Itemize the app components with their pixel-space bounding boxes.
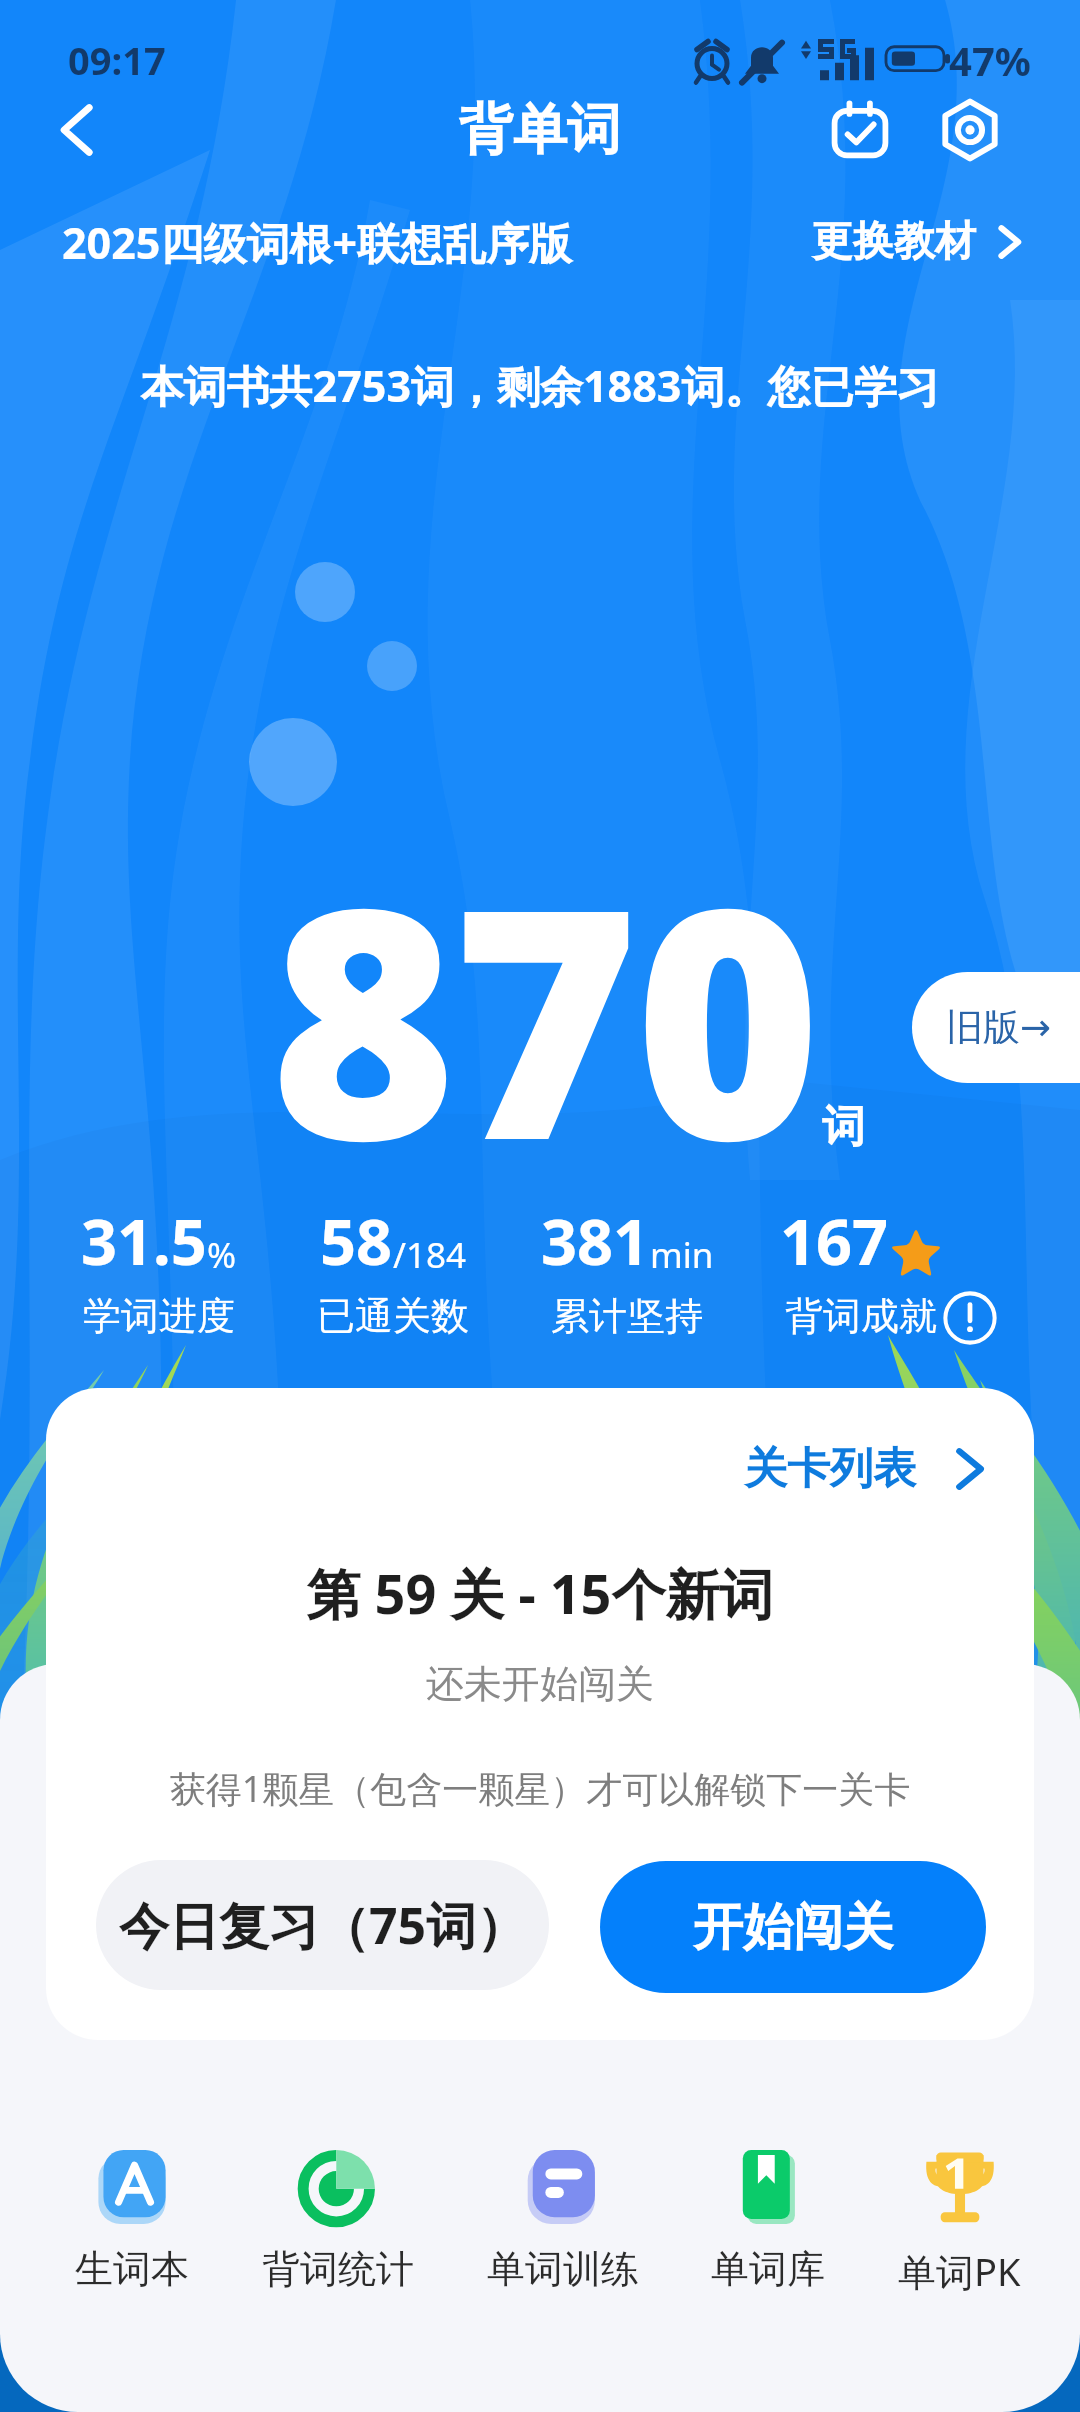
- staticText: 381: [541, 1198, 650, 1284]
- button[interactable]: 58: [276, 1198, 510, 1340]
- button[interactable]: 旧版→: [912, 972, 1080, 1083]
- staticText: 关卡列表: [744, 1442, 916, 1496]
- staticText: 背词统计: [262, 2245, 414, 2293]
- staticText: 生词本: [75, 2245, 189, 2293]
- staticText: 09:17: [68, 34, 166, 86]
- button[interactable]: 31.5: [42, 1198, 276, 1340]
- staticText: 47%: [949, 33, 1031, 87]
- button[interactable]: 单词库: [695, 2141, 841, 2297]
- staticText: 今日复习（75词）: [119, 1891, 527, 1959]
- staticText: 更换教材: [812, 216, 976, 268]
- staticText: 单词训练: [487, 2245, 639, 2293]
- staticText: 31.5: [81, 1198, 207, 1284]
- staticText: 单词库: [711, 2245, 825, 2293]
- button[interactable]: Achievement info: [942, 1290, 998, 1346]
- staticText: 背单词: [459, 96, 621, 164]
- staticText: 第 59 关 - 15个新词: [46, 1556, 1034, 1630]
- staticText: 开始闯关: [693, 1896, 893, 1959]
- staticText: %: [207, 1231, 237, 1279]
- staticText: 已通关数: [317, 1292, 469, 1340]
- button[interactable]: 开始闯关: [600, 1861, 986, 1993]
- staticText: 167: [780, 1198, 889, 1284]
- staticText: /184: [393, 1231, 467, 1279]
- button[interactable]: 关卡列表: [734, 1432, 1006, 1506]
- button[interactable]: 单词训练: [471, 2141, 655, 2297]
- button[interactable]: Back: [34, 90, 118, 170]
- staticText: 词: [822, 1100, 865, 1154]
- staticText: 还未开始闯关: [46, 1660, 1034, 1708]
- button[interactable]: 背词统计: [246, 2141, 430, 2297]
- staticText: 单词PK: [898, 2245, 1021, 2297]
- button[interactable]: Check-in calendar: [812, 90, 908, 170]
- staticText: 学词进度: [83, 1292, 235, 1340]
- staticText: 旧版→: [946, 1004, 1052, 1051]
- button[interactable]: 今日复习（75词）: [96, 1860, 549, 1990]
- staticText: 获得1颗星（包含一颗星）才可以解锁下一关卡: [46, 1764, 1034, 1813]
- staticText: 累计坚持: [551, 1292, 703, 1340]
- button[interactable]: Settings: [922, 90, 1018, 170]
- staticText: min: [650, 1231, 714, 1279]
- button[interactable]: 381: [510, 1198, 744, 1340]
- button[interactable]: 167: [744, 1198, 978, 1340]
- staticText: 58: [320, 1198, 393, 1284]
- button[interactable]: 更换教材: [800, 208, 1042, 276]
- staticText: 背词成就: [785, 1292, 937, 1340]
- button[interactable]: 生词本: [59, 2141, 205, 2297]
- staticText: 870: [270, 799, 818, 1232]
- staticText: 2025四级词根+联想乱序版: [62, 213, 572, 272]
- staticText: 本词书共2753词，剩余1883词。您已学习: [0, 356, 1080, 415]
- button[interactable]: 单词PK: [882, 2141, 1037, 2301]
